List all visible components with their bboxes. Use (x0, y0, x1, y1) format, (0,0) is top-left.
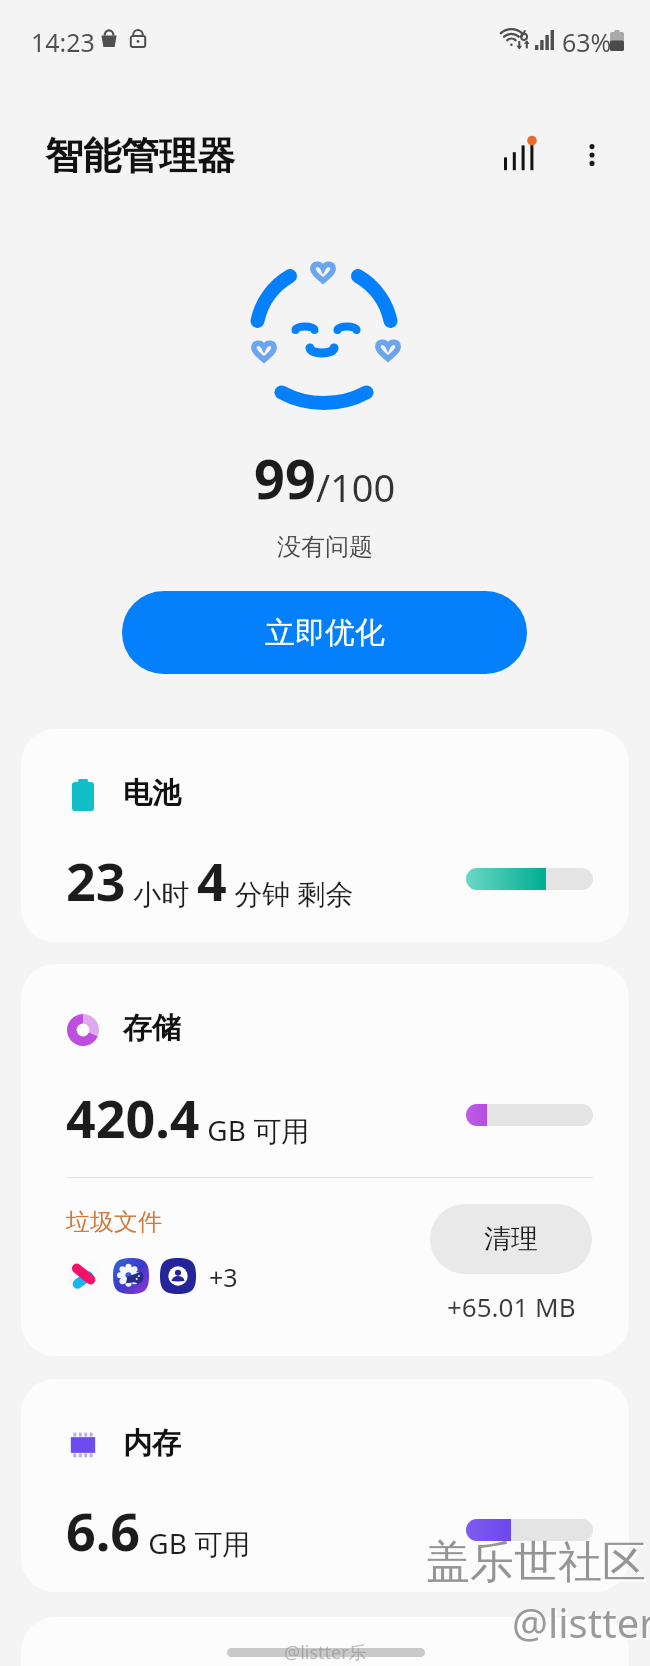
button[interactable]: 存储 (21, 964, 629, 1356)
staticText: 盖乐世社区 (426, 1535, 646, 1590)
staticText: 63% (562, 25, 612, 59)
staticText: 没有问题 (277, 532, 373, 562)
button[interactable]: 清理 (430, 1204, 592, 1274)
staticText: 清理 (484, 1222, 538, 1256)
staticText: 分钟 剩余 (227, 874, 354, 912)
button[interactable]: More options (562, 125, 622, 185)
staticText: 6.6 (66, 1495, 141, 1566)
staticText: @listter乐 (284, 1640, 367, 1665)
staticText: 垃圾文件 (66, 1207, 162, 1237)
staticText: 23 (66, 845, 126, 916)
staticText: @listter (512, 1595, 650, 1649)
staticText: GB 可用 (200, 1111, 310, 1149)
staticText: /100 (316, 461, 396, 513)
staticText: @listter (514, 1597, 650, 1651)
staticText: GB 可用 (141, 1524, 251, 1562)
button[interactable] (21, 1617, 629, 1666)
staticText: 4 (197, 845, 227, 916)
staticText: 电池 (123, 775, 181, 812)
button[interactable]: 立即优化 (122, 591, 527, 674)
staticText: 小时 (126, 874, 197, 912)
staticText: 智能管理器 (45, 132, 235, 180)
staticText: 99 (254, 441, 316, 515)
button[interactable]: Usage statistics (490, 125, 550, 185)
staticText: 420.4 (66, 1082, 200, 1153)
staticText: +65.01 MB (447, 1289, 576, 1324)
staticText: 盖乐世社区 (428, 1537, 648, 1592)
staticText: 内存 (123, 1425, 181, 1462)
staticText: 存储 (123, 1010, 181, 1047)
staticText: 立即优化 (265, 614, 385, 652)
staticText: 14:23 (31, 25, 95, 59)
staticText: +3 (209, 1260, 238, 1294)
button[interactable]: 电池 (21, 729, 629, 942)
button[interactable]: 内存 (21, 1379, 629, 1592)
